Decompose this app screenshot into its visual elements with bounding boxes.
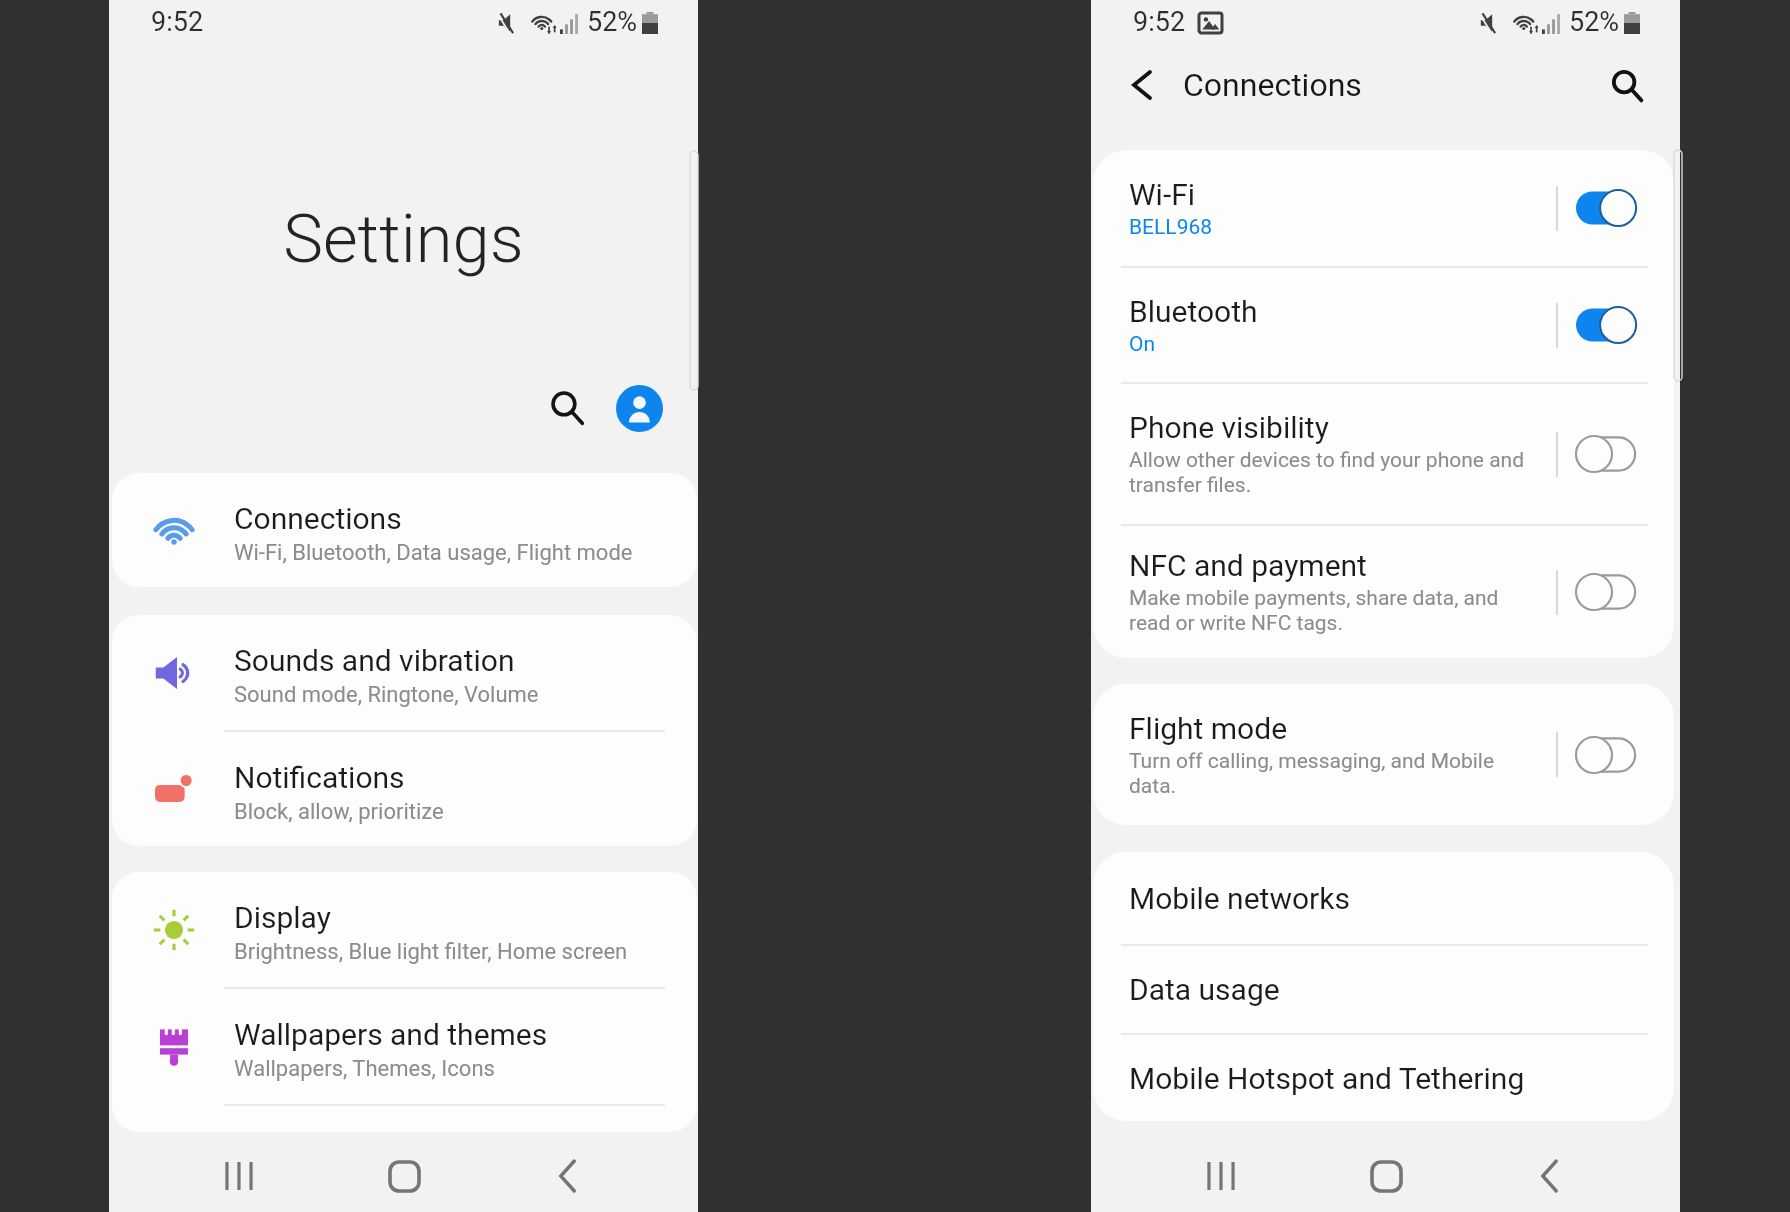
staticText: Flight mode [1129,711,1288,746]
staticText: data. [1129,774,1177,799]
staticText: Phone visibility [1129,410,1329,445]
staticText: Mobile networks [1129,881,1350,916]
button[interactable]: Sounds and vibration [112,615,697,730]
staticText: Connections [234,501,402,536]
staticText: Turn off calling, messaging, and Mobile [1129,749,1495,774]
button[interactable]: Off [1566,429,1658,479]
staticText: Make mobile payments, share data, and [1129,586,1499,611]
staticText: Data usage [1129,972,1280,1007]
staticText: Settings [109,200,698,279]
button[interactable]: Search [1599,58,1653,112]
staticText: Wallpapers, Themes, Icons [234,1056,495,1082]
staticText: Display [234,900,331,935]
staticText: On [1129,332,1156,357]
staticText: read or write NFC tags. [1129,611,1343,636]
button[interactable]: Search [544,385,590,431]
button[interactable]: On [1566,183,1658,233]
staticText: BELL968 [1129,215,1213,240]
button[interactable]: Phone visibility [1093,384,1674,524]
button[interactable]: Mobile Hotspot and Tethering [1093,1035,1674,1121]
button[interactable]: Back [533,1141,603,1211]
button[interactable]: NFC and payment [1093,526,1674,658]
button[interactable]: Home [369,1141,439,1211]
staticText: Notifications [234,760,405,795]
button[interactable]: Back [1515,1141,1585,1211]
button[interactable]: Display [112,872,697,987]
button[interactable]: Account [616,385,663,432]
staticText: 52% [587,6,638,38]
button[interactable]: Mobile networks [1093,852,1674,944]
staticText: transfer files. [1129,473,1252,498]
button[interactable]: Flight mode [1093,684,1674,825]
button[interactable]: Data usage [1093,946,1674,1033]
staticText: 9:52 [1133,6,1186,38]
staticText: Mobile Hotspot and Tethering [1129,1061,1525,1096]
staticText: Brightness, Blue light filter, Home scre… [234,939,628,965]
button[interactable]: Recents [204,1141,274,1211]
button[interactable]: Off [1566,730,1658,780]
staticText: 52% [1569,6,1620,38]
staticText: Connections [1183,66,1362,104]
button[interactable]: Wallpapers and themes [112,989,697,1104]
staticText: Allow other devices to find your phone a… [1129,448,1524,473]
staticText: 9:52 [151,6,204,38]
staticText: Bluetooth [1129,294,1258,329]
button[interactable]: Notifications [112,732,697,846]
button[interactable]: Home [1351,1141,1421,1211]
staticText: Wallpapers and themes [234,1017,548,1052]
button[interactable]: Connections [112,473,697,587]
button[interactable]: Back [1117,60,1167,110]
button[interactable]: Bluetooth [1093,268,1674,382]
staticText: Sound mode, Ringtone, Volume [234,682,539,708]
staticText: Block, allow, prioritize [234,799,444,825]
button[interactable]: On [1566,300,1658,350]
staticText: NFC and payment [1129,548,1367,583]
staticText: Wi-Fi, Bluetooth, Data usage, Flight mod… [234,540,633,566]
staticText: Sounds and vibration [234,643,515,678]
staticText: Wi-Fi [1129,177,1196,212]
button[interactable]: Recents [1186,1141,1256,1211]
button[interactable]: Wi-Fi [1093,150,1674,266]
button[interactable]: Off [1566,567,1658,617]
